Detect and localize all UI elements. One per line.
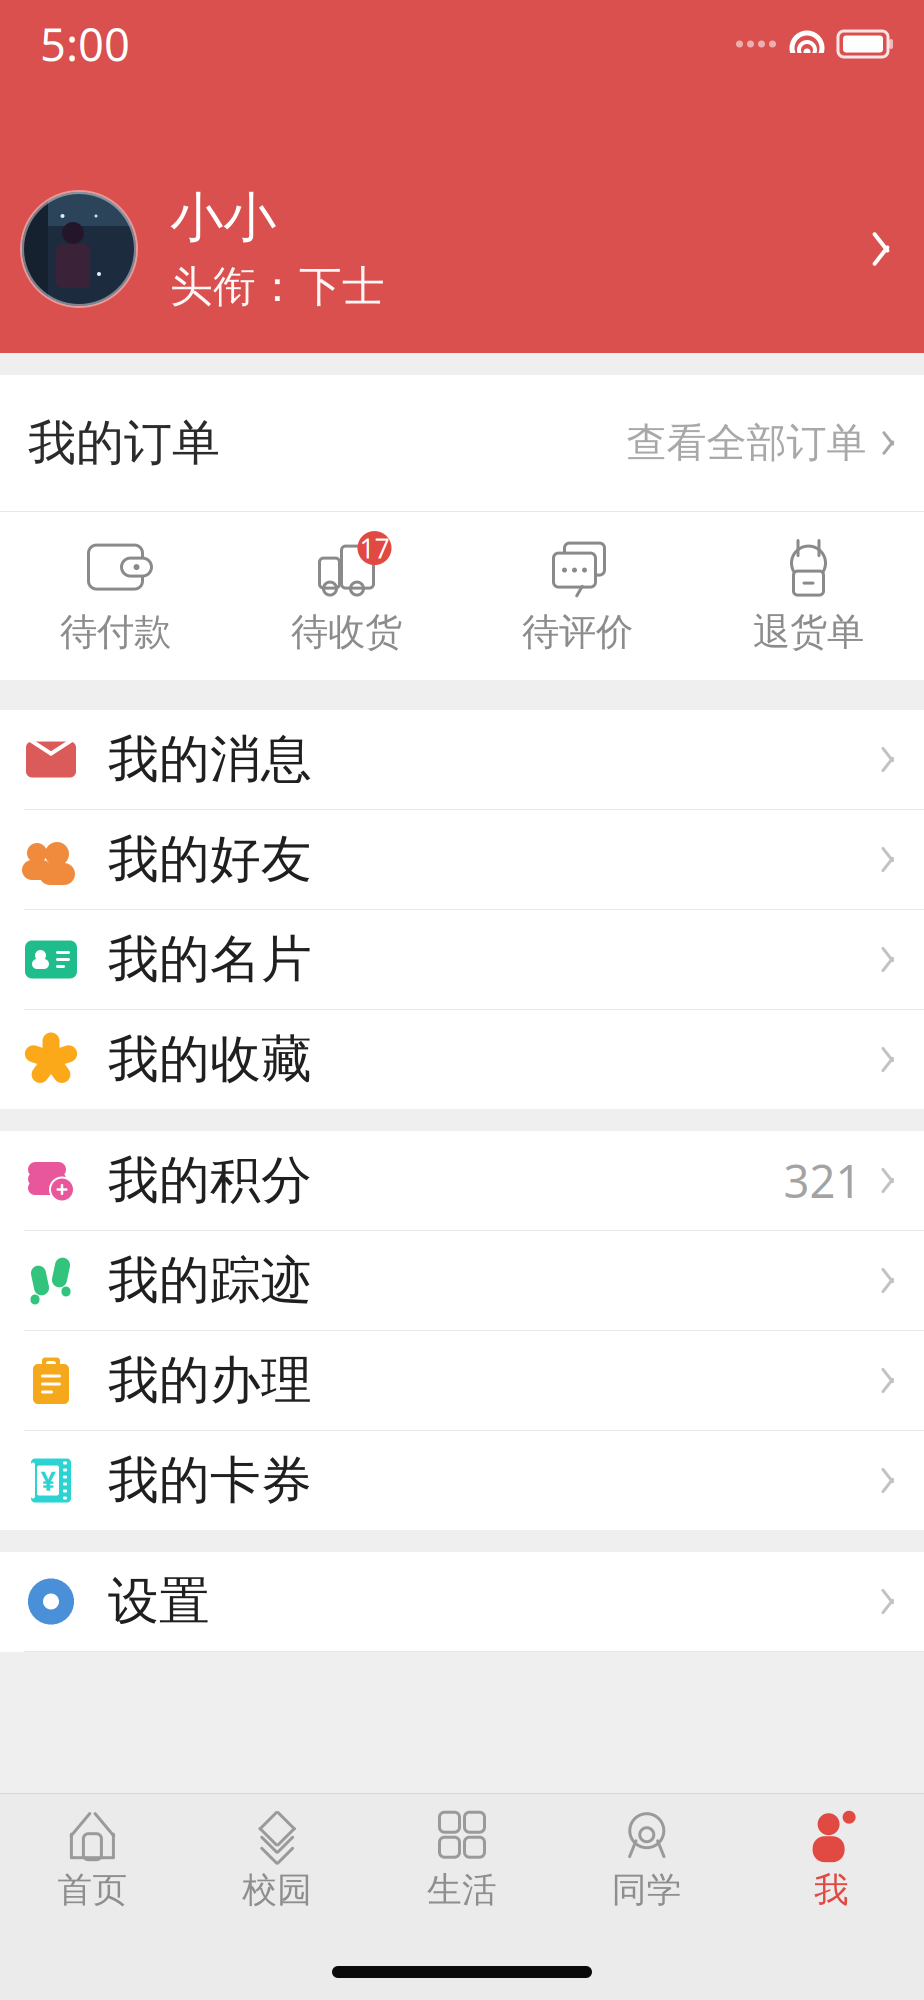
staticText: 校园 — [242, 1869, 312, 1911]
button[interactable]: 我的订单 — [0, 375, 924, 511]
staticText: 小小 — [170, 185, 276, 250]
staticText: 生活 — [427, 1869, 497, 1911]
button[interactable]: 我 — [739, 1795, 924, 1911]
button[interactable]: 校园 — [185, 1795, 370, 1911]
staticText: 5:00 — [40, 14, 130, 74]
staticText: 退货单 — [753, 609, 864, 655]
staticText: 我 — [814, 1869, 849, 1911]
staticText: 321 — [783, 1150, 861, 1211]
staticText: 我的收藏 — [108, 1028, 312, 1091]
staticText: 我的卡券 — [108, 1449, 312, 1512]
staticText: 待付款 — [60, 609, 171, 655]
staticText: 设置 — [108, 1570, 210, 1633]
button[interactable]: 同学 — [554, 1795, 739, 1911]
button[interactable]: 我的积分 — [0, 1131, 924, 1230]
staticText: 我的办理 — [108, 1349, 312, 1412]
button[interactable]: 我的踪迹 — [0, 1231, 924, 1330]
staticText: 查看全部订单 — [627, 418, 867, 467]
staticText: 17 — [359, 530, 389, 566]
button[interactable]: 个人资料 小小 — [0, 179, 924, 319]
button[interactable]: 17 — [231, 515, 462, 677]
staticText: 待收货 — [291, 609, 402, 655]
staticText: 同学 — [612, 1869, 682, 1911]
staticText: 我的好友 — [108, 828, 312, 891]
staticText: 我的订单 — [28, 413, 220, 472]
staticText: 我的踪迹 — [108, 1249, 312, 1312]
staticText: ¥ — [40, 1463, 55, 1498]
button[interactable]: 生活 — [370, 1795, 554, 1911]
button[interactable]: 我的消息 — [0, 710, 924, 809]
button[interactable]: 待评价 — [462, 515, 693, 677]
staticText: 我的积分 — [108, 1149, 312, 1212]
button[interactable]: 设置 — [0, 1552, 924, 1651]
button[interactable]: 我的名片 — [0, 910, 924, 1009]
staticText: 我的名片 — [108, 928, 312, 991]
button[interactable]: ¥ — [0, 1431, 924, 1530]
staticText: 首页 — [57, 1869, 127, 1911]
button[interactable]: 首页 — [0, 1795, 185, 1911]
button[interactable]: 我的收藏 — [0, 1010, 924, 1109]
staticText: 待评价 — [522, 609, 633, 655]
button[interactable]: 待付款 — [0, 515, 231, 677]
staticText: 头衔：下士 — [170, 261, 385, 313]
button[interactable]: 退货单 — [693, 515, 924, 677]
button[interactable]: 我的办理 — [0, 1331, 924, 1430]
button[interactable]: 我的好友 — [0, 810, 924, 909]
staticText: 我的消息 — [108, 728, 312, 791]
